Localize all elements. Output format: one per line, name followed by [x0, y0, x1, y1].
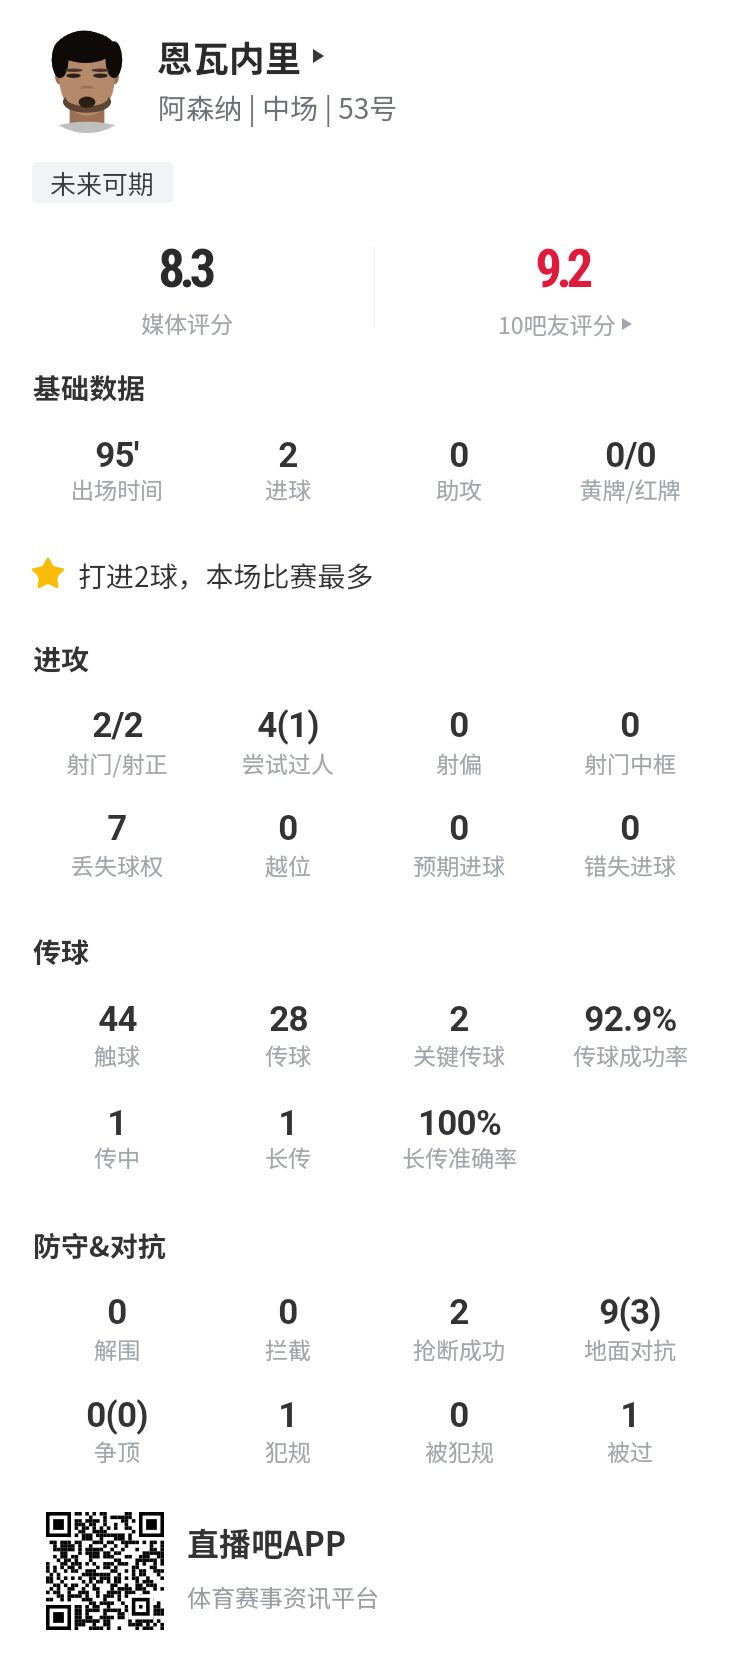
staticText: 解围 — [94, 1332, 140, 1365]
button[interactable]: 28 — [204, 987, 372, 1078]
staticText: 传球成功率 — [573, 1038, 688, 1071]
button[interactable]: 44 — [33, 987, 201, 1078]
staticText: 媒体评分 — [141, 306, 233, 339]
button[interactable]: 4(1) — [204, 693, 372, 786]
button[interactable]: 10吧友评分 — [498, 307, 632, 340]
staticText: 0/0 — [605, 435, 656, 476]
staticText: 体育赛事资讯平台 — [187, 1579, 379, 1614]
staticText: 9.2 — [535, 238, 588, 300]
staticText: 越位 — [265, 848, 311, 881]
staticText: 阿森纳 | 中场 | 53号 — [158, 87, 398, 128]
staticText: 4(1) — [257, 705, 319, 746]
staticText: 10吧友评分 — [498, 307, 616, 340]
button[interactable]: 100% — [375, 1091, 543, 1180]
staticText: 助攻 — [436, 472, 482, 505]
staticText: 0 — [620, 705, 640, 746]
staticText: 2/2 — [92, 705, 143, 746]
staticText: 尝试过人 — [242, 746, 334, 779]
staticText: 92.9% — [584, 999, 677, 1040]
button[interactable]: 95' — [33, 423, 201, 512]
staticText: 1 — [278, 1103, 298, 1144]
button[interactable]: 0 — [546, 693, 714, 786]
staticText: 触球 — [94, 1038, 140, 1071]
staticText: 95' — [95, 435, 139, 476]
staticText: 传中 — [94, 1140, 140, 1173]
staticText: 8.3 — [158, 238, 211, 300]
button[interactable]: 0(0) — [33, 1383, 201, 1474]
button[interactable]: 9(3) — [546, 1280, 714, 1372]
button[interactable]: 0 — [375, 1383, 543, 1474]
staticText: 长传准确率 — [402, 1140, 517, 1173]
staticText: 0(0) — [86, 1395, 148, 1436]
button[interactable]: 7 — [33, 796, 201, 888]
staticText: 0 — [278, 1292, 298, 1333]
staticText: 2 — [278, 435, 298, 476]
button[interactable]: 0 — [546, 796, 714, 888]
button[interactable]: 0 — [375, 693, 543, 786]
other: QR code — [46, 1512, 164, 1630]
staticText: 抢断成功 — [413, 1332, 505, 1365]
staticText: 黄牌/红牌 — [579, 472, 681, 505]
staticText: 射门/射正 — [66, 746, 168, 779]
staticText: 争顶 — [94, 1434, 140, 1467]
staticText: 2 — [449, 999, 469, 1040]
staticText: 地面对抗 — [584, 1332, 676, 1365]
staticText: 犯规 — [265, 1434, 311, 1467]
button[interactable]: 未来可期 — [32, 162, 173, 203]
staticText: 射门中框 — [584, 746, 676, 779]
button[interactable]: 0/0 — [546, 423, 714, 512]
staticText: 1 — [107, 1103, 127, 1144]
button[interactable]: 1 — [204, 1383, 372, 1474]
staticText: 0 — [620, 808, 640, 849]
staticText: 0 — [449, 435, 469, 476]
button[interactable]: 1 — [204, 1091, 372, 1180]
staticText: 拦截 — [265, 1332, 311, 1365]
button[interactable]: 0 — [204, 1280, 372, 1372]
staticText: 出场时间 — [71, 472, 163, 505]
staticText: 28 — [269, 999, 308, 1040]
staticText: 1 — [620, 1395, 640, 1436]
staticText: 防守&对抗 — [33, 1225, 166, 1266]
staticText: 0 — [278, 808, 298, 849]
staticText: 直播吧APP — [187, 1519, 347, 1565]
button[interactable]: 1 — [546, 1383, 714, 1474]
staticText: 2 — [449, 1292, 469, 1333]
staticText: 长传 — [265, 1140, 311, 1173]
staticText: 0 — [449, 808, 469, 849]
staticText: 丢失球权 — [71, 848, 163, 881]
staticText: 关键传球 — [413, 1038, 505, 1071]
staticText: 射偏 — [436, 746, 482, 779]
staticText: 传球 — [33, 931, 90, 972]
staticText: 错失进球 — [584, 848, 676, 881]
staticText: 未来可期 — [50, 164, 155, 202]
button[interactable]: 2 — [375, 987, 543, 1078]
button[interactable]: 0 — [375, 796, 543, 888]
staticText: 打进2球，本场比赛最多 — [78, 555, 374, 596]
staticText: 恩瓦内里 — [157, 30, 302, 82]
staticText: 9(3) — [599, 1292, 661, 1333]
staticText: 0 — [107, 1292, 127, 1333]
staticText: 0 — [449, 705, 469, 746]
staticText: 传球 — [265, 1038, 311, 1071]
staticText: 预期进球 — [413, 848, 505, 881]
staticText: 基础数据 — [33, 367, 146, 408]
staticText: 被犯规 — [425, 1434, 494, 1467]
button[interactable]: 2 — [204, 423, 372, 512]
button[interactable]: 恩瓦内里 — [157, 30, 324, 82]
staticText: 0 — [449, 1395, 469, 1436]
button[interactable]: 92.9% — [546, 987, 714, 1078]
button[interactable]: 2/2 — [33, 693, 201, 786]
staticText: 44 — [98, 999, 137, 1040]
staticText: 被过 — [607, 1434, 653, 1467]
button[interactable]: 0 — [204, 796, 372, 888]
staticText: 进球 — [265, 472, 311, 505]
button[interactable]: 0 — [375, 423, 543, 512]
staticText: 进攻 — [33, 638, 90, 679]
button[interactable]: 0 — [33, 1280, 201, 1372]
button[interactable]: 1 — [33, 1091, 201, 1180]
button[interactable]: Player photo — [31, 21, 143, 133]
button[interactable]: QR code — [46, 1512, 386, 1630]
staticText: 1 — [278, 1395, 298, 1436]
staticText: 100% — [418, 1103, 501, 1144]
button[interactable]: 2 — [375, 1280, 543, 1372]
